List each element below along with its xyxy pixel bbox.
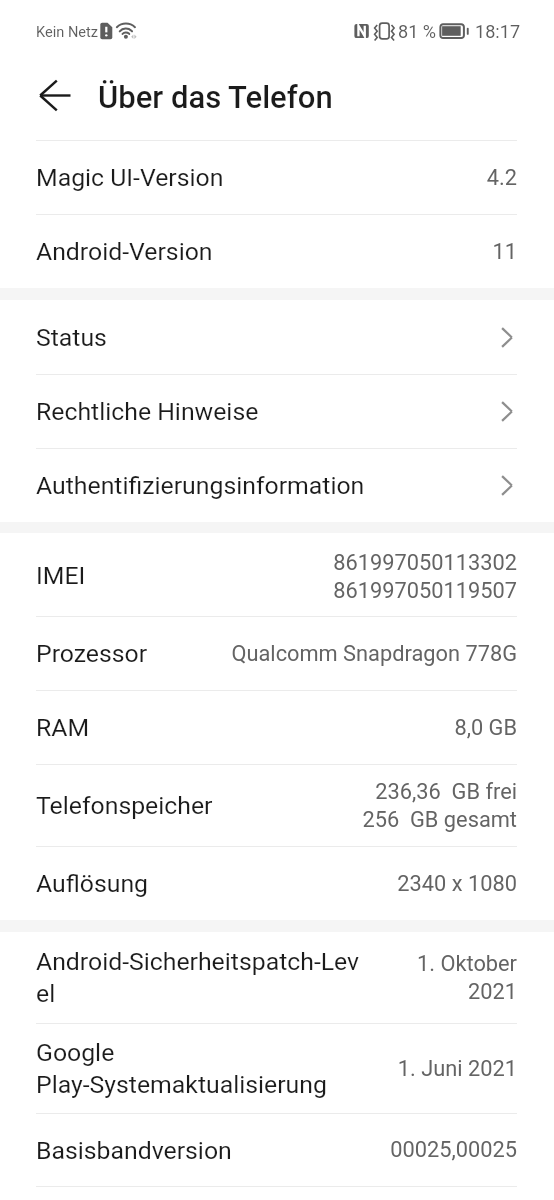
button[interactable]: Authentifizierungsinformation bbox=[0, 449, 554, 522]
staticText: 81 % bbox=[398, 21, 437, 42]
button[interactable]: IMEI bbox=[0, 533, 554, 616]
button[interactable]: Prozessor bbox=[0, 617, 554, 690]
staticText: 861997050113302 861997050119507 bbox=[333, 550, 517, 603]
staticText: 4.2 bbox=[486, 165, 517, 191]
staticText: RAM bbox=[36, 713, 448, 742]
staticText: Android-Version bbox=[36, 237, 486, 266]
staticText: Über das Telefon bbox=[98, 79, 333, 115]
button[interactable]: Android-Sicherheitspatch-Lev el bbox=[0, 932, 554, 1023]
staticText: Rechtliche Hinweise bbox=[36, 397, 259, 426]
button[interactable]: Basisbandversion bbox=[0, 1114, 554, 1186]
staticText: Telefonspeicher bbox=[36, 791, 356, 820]
button[interactable]: Back bbox=[29, 69, 81, 121]
button[interactable]: Google Play-Systemaktualisierung bbox=[0, 1024, 554, 1113]
button[interactable]: Android-Version bbox=[0, 215, 554, 288]
button[interactable]: Rechtliche Hinweise bbox=[0, 375, 554, 448]
staticText: Kein Netz bbox=[36, 23, 99, 40]
button[interactable]: Magic UI-Version bbox=[0, 141, 554, 214]
staticText: Google Play-Systemaktualisierung bbox=[36, 1038, 391, 1099]
button[interactable]: Auflösung bbox=[0, 847, 554, 920]
button[interactable]: Status bbox=[0, 300, 554, 374]
staticText: 2340 x 1080 bbox=[397, 871, 517, 897]
staticText: Magic UI-Version bbox=[36, 163, 480, 192]
staticText: Authentifizierungsinformation bbox=[36, 471, 365, 500]
staticText: Prozessor bbox=[36, 639, 225, 668]
staticText: 8,0 GB bbox=[454, 715, 517, 741]
staticText: IMEI bbox=[36, 561, 327, 590]
staticText: Basisbandversion bbox=[36, 1136, 384, 1165]
staticText: Status bbox=[36, 323, 107, 352]
staticText: 18:17 bbox=[475, 21, 521, 42]
staticText: Qualcomm Snapdragon 778G bbox=[231, 641, 517, 667]
staticText: Android-Sicherheitspatch-Lev el bbox=[36, 947, 411, 1008]
staticText: 00025,00025 bbox=[390, 1137, 517, 1163]
staticText: 236,36 GB frei 256 GB gesamt bbox=[362, 779, 517, 832]
staticText: 1. Oktober 2021 bbox=[417, 951, 517, 1004]
staticText: Auflösung bbox=[36, 869, 391, 898]
staticText: 11 bbox=[492, 239, 517, 265]
staticText: 1. Juni 2021 bbox=[397, 1056, 517, 1082]
button[interactable]: Telefonspeicher bbox=[0, 765, 554, 846]
button[interactable]: RAM bbox=[0, 691, 554, 764]
